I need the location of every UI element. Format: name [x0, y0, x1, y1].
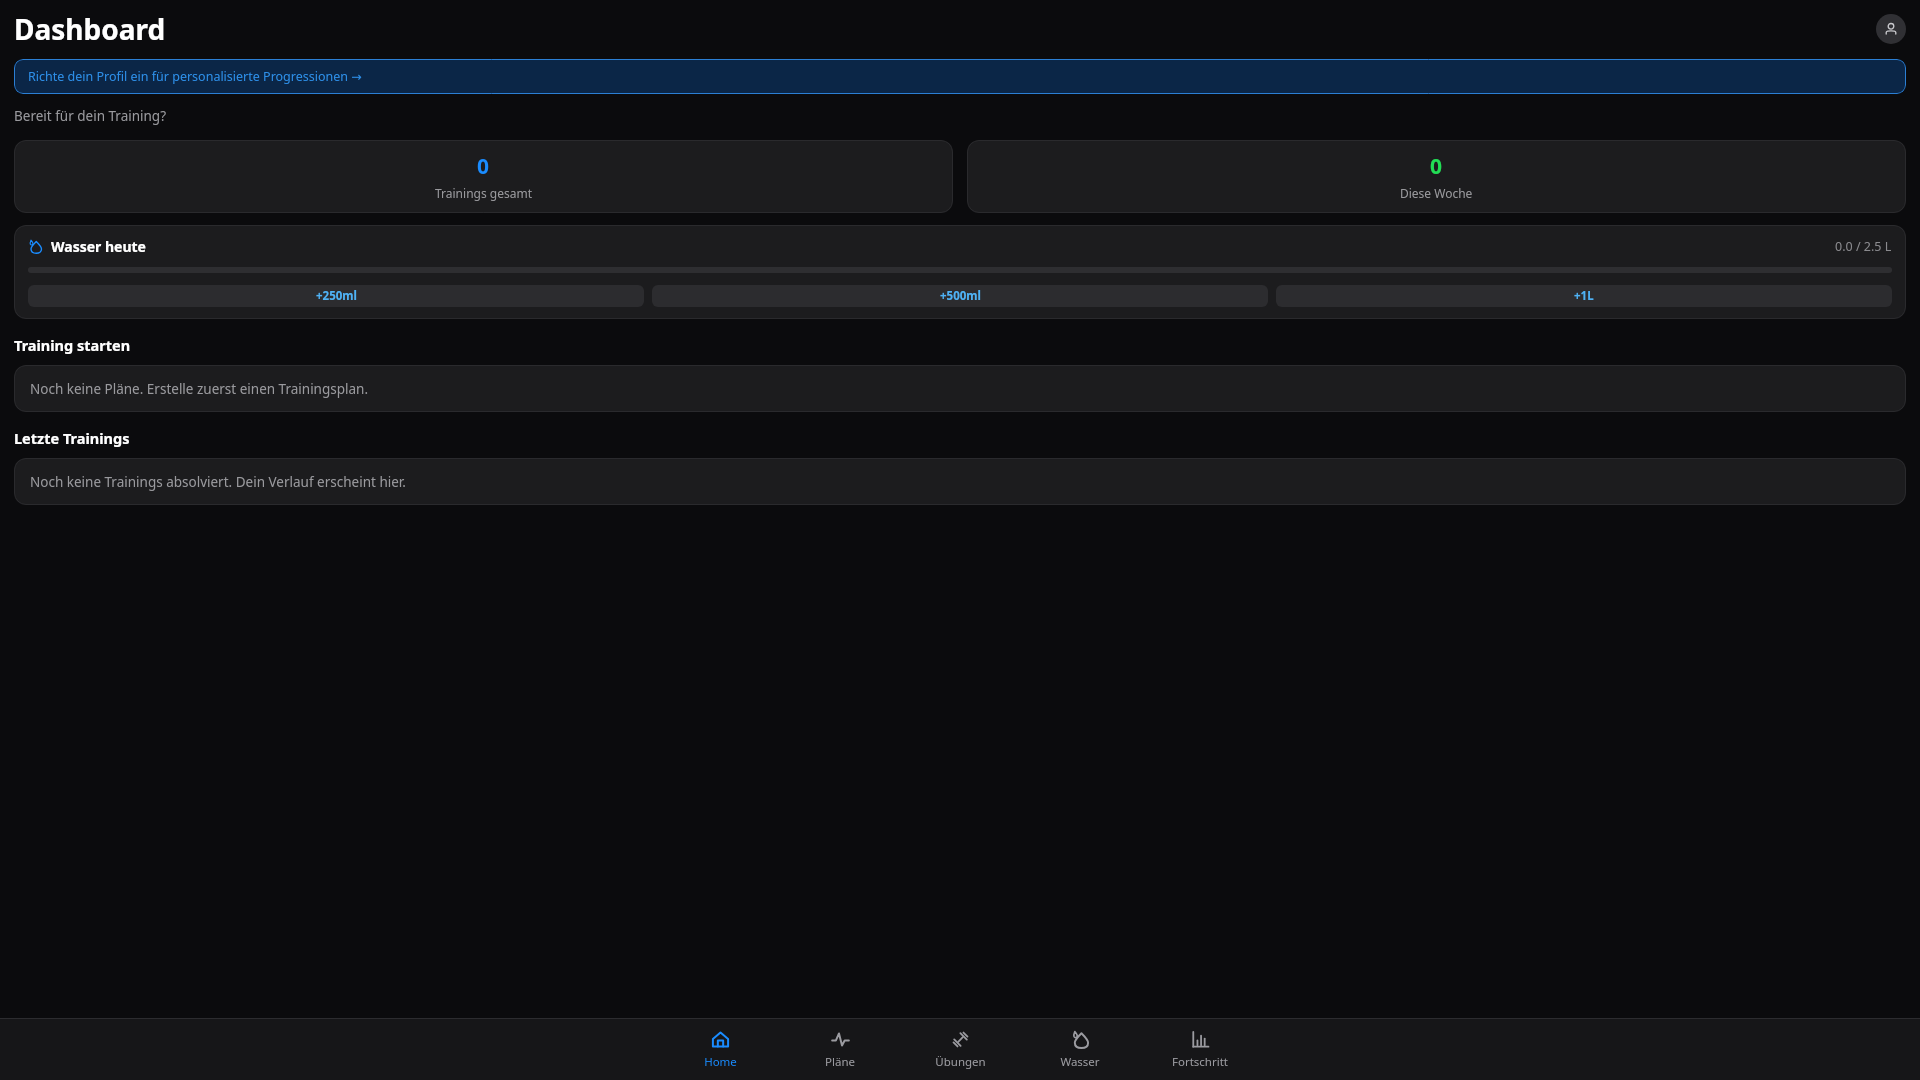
staticText: +250ml	[316, 288, 357, 304]
button[interactable]: Richte dein Profil ein für personalisier…	[14, 59, 1906, 94]
staticText: 0	[477, 152, 490, 181]
staticText: Letzte Trainings	[14, 428, 130, 448]
button[interactable]: +500ml	[652, 285, 1268, 307]
button[interactable]: Pläne	[780, 1025, 900, 1075]
button[interactable]: Home	[660, 1025, 780, 1075]
staticText: 0	[1430, 152, 1443, 181]
staticText: Wasser	[1060, 1054, 1100, 1070]
staticText: Richte dein Profil ein für personalisier…	[28, 68, 362, 85]
staticText: Diese Woche	[1400, 185, 1473, 201]
staticText: Fortschritt	[1172, 1054, 1228, 1070]
button[interactable]: Noch keine Trainings absolviert. Dein Ve…	[14, 458, 1906, 505]
button[interactable]: 0	[14, 140, 953, 213]
staticText: Training starten	[14, 335, 131, 355]
button[interactable]: +1L	[1276, 285, 1892, 307]
button[interactable]: +250ml	[28, 285, 644, 307]
button[interactable]: 0	[967, 140, 1906, 213]
button[interactable]: Fortschritt	[1140, 1025, 1260, 1075]
button[interactable]: Wasser	[1020, 1025, 1140, 1075]
button[interactable]: Übungen	[900, 1025, 1020, 1075]
staticText: Dashboard	[14, 10, 166, 48]
staticText: +500ml	[940, 288, 981, 304]
staticText: Home	[704, 1054, 737, 1070]
button[interactable]: Profil	[1876, 14, 1906, 44]
staticText: Trainings gesamt	[435, 185, 532, 201]
staticText: Noch keine Trainings absolviert. Dein Ve…	[30, 473, 406, 491]
staticText: Übungen	[935, 1054, 986, 1070]
staticText: Bereit für dein Training?	[14, 107, 167, 125]
staticText: 0.0 / 2.5 L	[1835, 238, 1892, 255]
button[interactable]: Noch keine Pläne. Erstelle zuerst einen …	[14, 365, 1906, 412]
staticText: Noch keine Pläne. Erstelle zuerst einen …	[30, 380, 369, 398]
staticText: Pläne	[825, 1054, 855, 1070]
staticText: Wasser heute	[51, 237, 146, 256]
staticText: +1L	[1574, 288, 1594, 304]
